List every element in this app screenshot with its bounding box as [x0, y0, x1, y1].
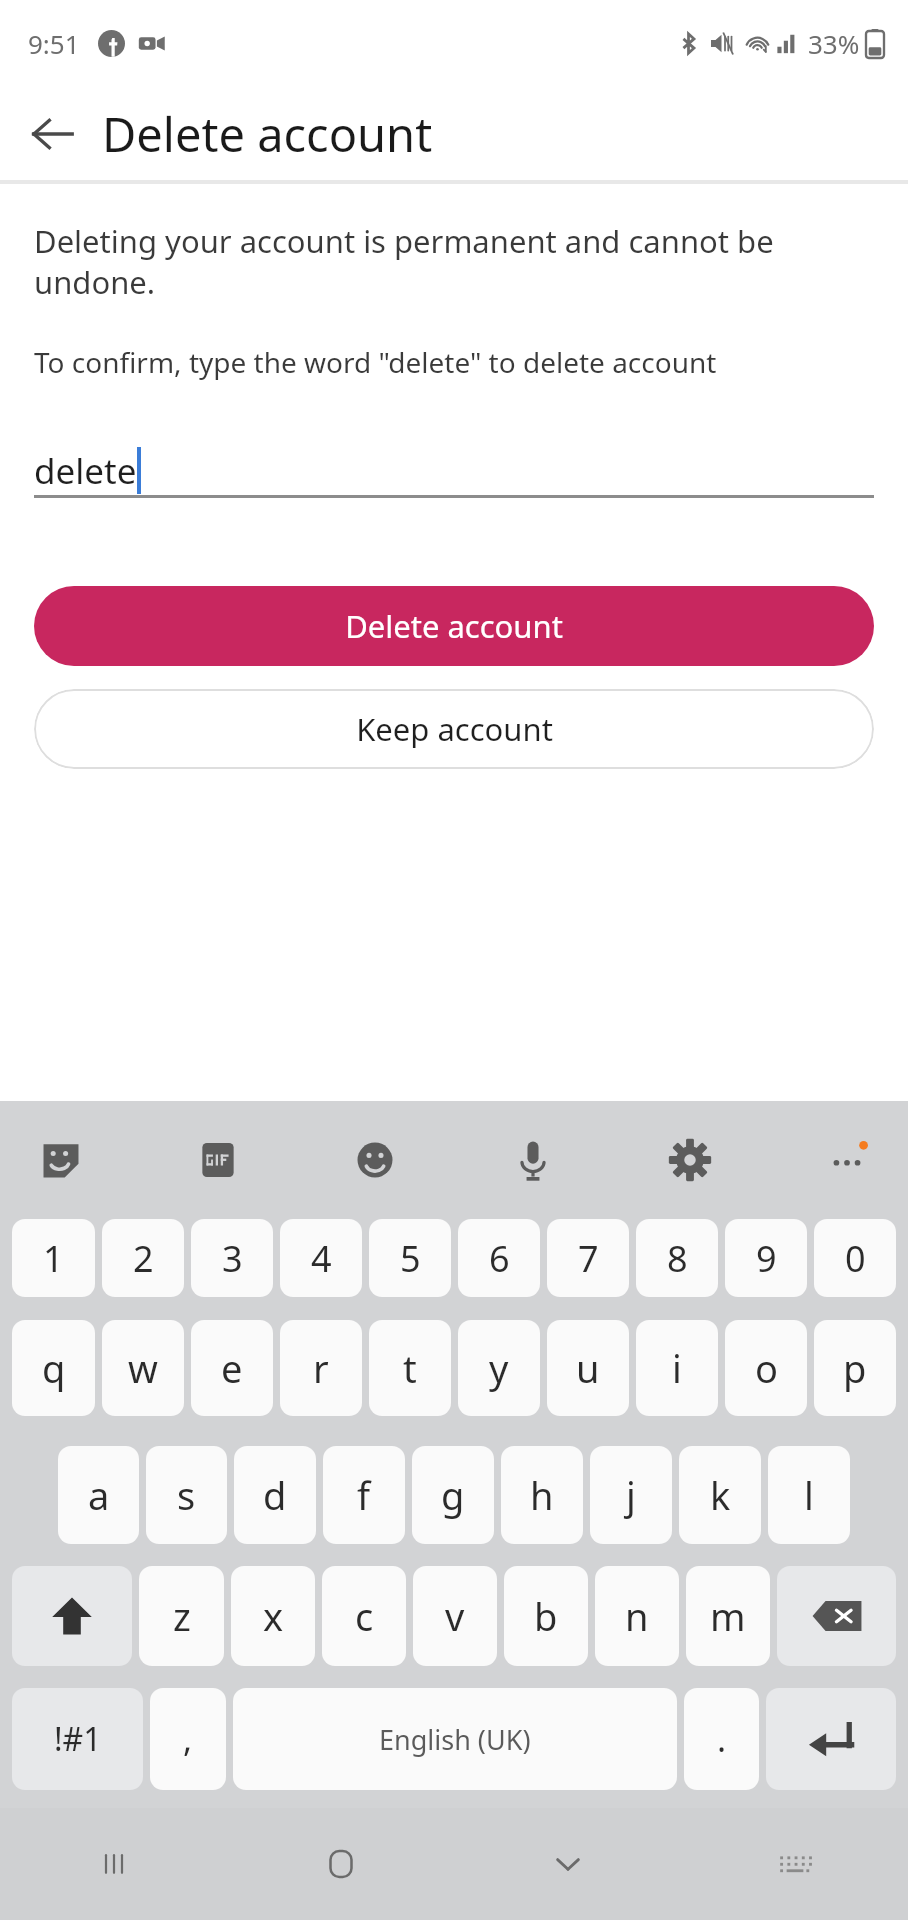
staticText: 2 [133, 1234, 154, 1283]
button[interactable]: v [413, 1566, 497, 1666]
button[interactable]: 2 [102, 1219, 184, 1297]
staticText: 6 [489, 1234, 510, 1283]
staticText: m [710, 1590, 746, 1642]
staticText: 1 [43, 1234, 64, 1283]
button[interactable]: r [280, 1320, 362, 1416]
staticText: To confirm, type the word "delete" to de… [34, 343, 717, 381]
button[interactable]: Switch keyboard [681, 1808, 908, 1920]
button[interactable]: . [684, 1688, 759, 1790]
staticText: . [717, 1716, 727, 1762]
button[interactable]: 8 [636, 1219, 718, 1297]
staticText: p [843, 1342, 867, 1394]
staticText: 33% [808, 26, 860, 61]
button[interactable]: d [234, 1446, 316, 1544]
button[interactable]: n [595, 1566, 679, 1666]
staticText: e [221, 1342, 243, 1394]
staticText: f [357, 1469, 371, 1521]
button[interactable]: i [636, 1320, 718, 1416]
staticText: 5 [400, 1234, 421, 1283]
button[interactable]: Home [227, 1808, 454, 1920]
button[interactable]: Backspace [777, 1566, 896, 1666]
button[interactable]: 9 [725, 1219, 807, 1297]
staticText: h [530, 1469, 554, 1521]
button[interactable]: k [679, 1446, 761, 1544]
button[interactable]: Stickers [20, 1119, 102, 1201]
staticText: q [42, 1342, 66, 1394]
staticText: t [403, 1342, 417, 1394]
button[interactable]: m [686, 1566, 770, 1666]
button[interactable]: Keyboard settings [649, 1119, 731, 1201]
button[interactable]: w [102, 1320, 184, 1416]
staticText: l [804, 1469, 814, 1521]
staticText: v [445, 1590, 465, 1642]
staticText: delete [34, 447, 137, 495]
button[interactable]: English (UK) [233, 1688, 677, 1790]
staticText: c [355, 1590, 374, 1642]
button[interactable]: 5 [369, 1219, 451, 1297]
staticText: 9:51 [28, 26, 80, 61]
staticText: j [626, 1469, 636, 1521]
button[interactable]: Back [8, 90, 96, 178]
staticText: k [710, 1469, 731, 1521]
staticText: r [313, 1342, 329, 1394]
staticText: z [173, 1590, 191, 1642]
button[interactable]: Voice input [492, 1119, 574, 1201]
staticText: n [625, 1590, 649, 1642]
button[interactable]: 7 [547, 1219, 629, 1297]
button[interactable]: f [323, 1446, 405, 1544]
staticText: s [177, 1469, 196, 1521]
button[interactable]: Enter [766, 1688, 896, 1790]
button[interactable]: a [58, 1446, 139, 1544]
button[interactable]: More options [806, 1119, 888, 1201]
staticText: , [183, 1716, 193, 1762]
button[interactable]: e [191, 1320, 273, 1416]
button[interactable]: h [501, 1446, 583, 1544]
button[interactable]: Delete account [34, 586, 874, 666]
button[interactable]: Shift [12, 1566, 132, 1666]
button[interactable]: x [231, 1566, 315, 1666]
button[interactable]: s [146, 1446, 227, 1544]
staticText: o [755, 1342, 778, 1394]
button[interactable]: t [369, 1320, 451, 1416]
button[interactable]: j [590, 1446, 672, 1544]
button[interactable]: u [547, 1320, 629, 1416]
staticText: 8 [667, 1234, 688, 1283]
staticText: 9 [756, 1234, 777, 1283]
button[interactable]: g [412, 1446, 494, 1544]
staticText: d [263, 1469, 287, 1521]
button[interactable]: b [504, 1566, 588, 1666]
button[interactable]: 0 [814, 1219, 896, 1297]
staticText: Delete account [345, 605, 563, 647]
button[interactable]: 1 [12, 1219, 95, 1297]
button[interactable]: Emoji [334, 1119, 416, 1201]
button[interactable]: y [458, 1320, 540, 1416]
button[interactable]: delete [34, 425, 874, 495]
button[interactable]: , [150, 1688, 226, 1790]
staticText: Delete account [102, 102, 433, 166]
staticText: b [534, 1590, 558, 1642]
button[interactable]: p [814, 1320, 896, 1416]
button[interactable]: Keep account [34, 689, 874, 769]
staticText: a [88, 1469, 110, 1521]
staticText: i [672, 1342, 682, 1394]
button[interactable]: z [139, 1566, 224, 1666]
button[interactable]: GIF [177, 1119, 259, 1201]
button[interactable]: Hide keyboard [454, 1808, 681, 1920]
staticText: y [489, 1342, 509, 1394]
staticText: Deleting your account is permanent and c… [34, 220, 874, 303]
staticText: 7 [578, 1234, 599, 1283]
button[interactable]: q [12, 1320, 95, 1416]
staticText: 0 [845, 1234, 866, 1283]
staticText: w [128, 1342, 158, 1394]
staticText: g [441, 1469, 465, 1521]
button[interactable]: Recent apps [0, 1808, 227, 1920]
button[interactable]: o [725, 1320, 807, 1416]
button[interactable]: l [768, 1446, 850, 1544]
button[interactable]: !#1 [12, 1688, 143, 1790]
button[interactable]: 6 [458, 1219, 540, 1297]
button[interactable]: 3 [191, 1219, 273, 1297]
staticText: !#1 [54, 1717, 102, 1761]
button[interactable]: c [322, 1566, 406, 1666]
staticText: 3 [222, 1234, 243, 1283]
button[interactable]: 4 [280, 1219, 362, 1297]
